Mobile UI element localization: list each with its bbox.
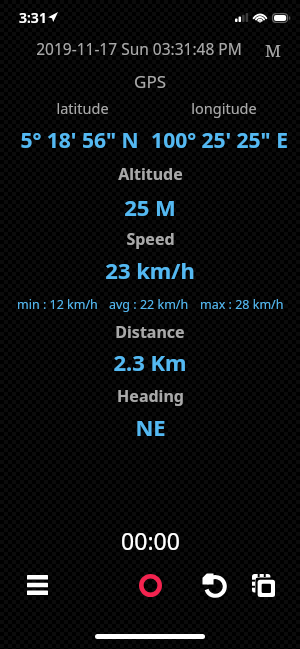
staticText: 00:00: [121, 525, 180, 556]
staticText: 100° 25' 25" E: [151, 126, 288, 155]
staticText: M: [265, 39, 281, 62]
staticText: 2019-11-17 Sun 03:31:48 PM: [36, 38, 242, 59]
button[interactable]: Layers: [238, 565, 288, 605]
staticText: min : 12 km/h: [17, 296, 98, 313]
staticText: avg : 22 km/h: [109, 296, 189, 313]
staticText: Speed: [126, 228, 175, 250]
staticText: 23 km/h: [105, 255, 195, 285]
staticText: longitude: [191, 98, 257, 118]
staticText: NE: [135, 412, 166, 442]
staticText: GPS: [134, 70, 166, 93]
staticText: Distance: [115, 321, 185, 343]
button[interactable]: Reset: [189, 565, 239, 605]
button[interactable]: Menu: [12, 565, 62, 605]
staticText: 5° 18' 56" N: [20, 126, 139, 155]
staticText: Heading: [117, 385, 184, 407]
staticText: Altitude: [118, 163, 183, 185]
staticText: 2.3 Km: [113, 347, 187, 377]
staticText: latitude: [56, 98, 109, 118]
staticText: 3:31: [19, 8, 47, 27]
button[interactable]: Record: [125, 565, 175, 605]
staticText: max : 28 km/h: [200, 296, 284, 313]
staticText: 25 M: [124, 192, 176, 222]
